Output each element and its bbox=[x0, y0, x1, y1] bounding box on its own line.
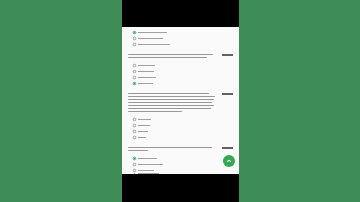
button[interactable] bbox=[128, 173, 233, 174]
button[interactable] bbox=[128, 41, 233, 47]
button[interactable] bbox=[128, 29, 233, 35]
button[interactable] bbox=[128, 134, 233, 140]
button[interactable] bbox=[128, 62, 233, 68]
button[interactable] bbox=[128, 68, 233, 74]
button[interactable] bbox=[128, 128, 233, 134]
button[interactable] bbox=[128, 161, 233, 167]
button[interactable] bbox=[128, 80, 233, 86]
button[interactable]: Scroll to top bbox=[223, 155, 235, 167]
button[interactable] bbox=[128, 74, 233, 80]
button[interactable] bbox=[128, 116, 233, 122]
button[interactable] bbox=[128, 167, 233, 173]
button[interactable] bbox=[128, 35, 233, 41]
button[interactable] bbox=[128, 155, 233, 161]
button[interactable] bbox=[128, 122, 233, 128]
